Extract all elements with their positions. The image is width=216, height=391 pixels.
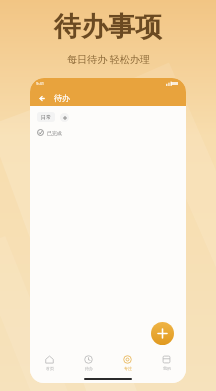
- button[interactable]: 已完成: [37, 128, 179, 137]
- button[interactable]: 添加分类: [60, 113, 69, 122]
- staticText: 已完成: [47, 130, 62, 136]
- button[interactable]: 日常: [37, 112, 55, 122]
- button[interactable]: 新建待办: [151, 322, 174, 345]
- staticText: 每日待办 轻松办理: [67, 52, 150, 66]
- staticText: 9:41: [36, 81, 44, 86]
- staticText: 待办: [85, 366, 93, 371]
- staticText: 待办: [54, 93, 70, 103]
- button[interactable]: 我的: [147, 351, 186, 375]
- staticText: 我的: [163, 366, 171, 371]
- button[interactable]: 首页: [30, 351, 69, 375]
- staticText: 首页: [46, 366, 54, 371]
- button[interactable]: 返回: [36, 92, 48, 104]
- button[interactable]: 待办: [69, 351, 108, 375]
- staticText: 待办事项: [54, 10, 162, 44]
- staticText: 专注: [124, 366, 132, 371]
- button[interactable]: 专注: [108, 351, 147, 375]
- staticText: 日常: [41, 114, 51, 120]
